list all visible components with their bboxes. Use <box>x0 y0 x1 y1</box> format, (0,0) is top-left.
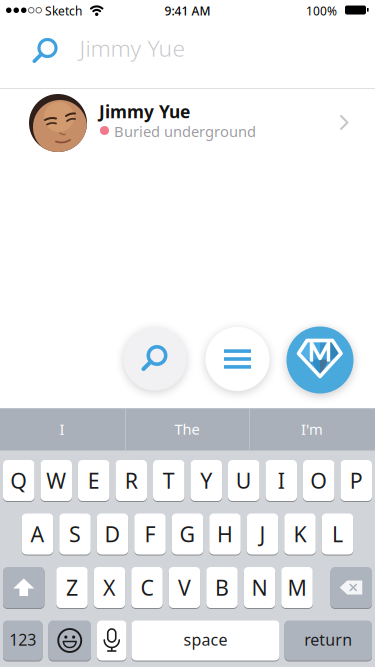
staticText: L <box>332 520 343 548</box>
button[interactable]: 123 <box>3 620 42 660</box>
button[interactable]: Y <box>190 460 222 501</box>
button[interactable]: D <box>97 513 128 554</box>
staticText: Sketch <box>45 3 82 19</box>
button[interactable]: Search <box>0 20 375 88</box>
button[interactable]: I <box>0 408 124 450</box>
staticText: I <box>59 419 64 439</box>
button[interactable]: J <box>247 513 278 554</box>
button[interactable]: Dictate <box>97 620 126 660</box>
staticText: The <box>174 419 199 439</box>
button[interactable]: T <box>153 460 184 501</box>
staticText: U <box>236 466 252 495</box>
button[interactable]: Search <box>123 327 186 390</box>
button[interactable]: A <box>22 513 53 554</box>
button[interactable]: F <box>134 513 166 554</box>
staticText: Q <box>10 466 27 495</box>
staticText: V <box>178 573 191 602</box>
staticText: P <box>350 466 363 495</box>
staticText: Buried underground <box>114 121 256 141</box>
button[interactable]: Z <box>56 567 88 608</box>
button[interactable]: The <box>125 408 249 450</box>
staticText: X <box>103 573 116 602</box>
staticText: 123 <box>9 629 36 650</box>
button[interactable]: K <box>284 513 316 554</box>
button[interactable]: L <box>322 513 353 554</box>
staticText: I <box>278 466 285 495</box>
staticText: N <box>251 573 267 602</box>
staticText: F <box>144 520 155 548</box>
button[interactable]: M <box>281 567 313 608</box>
staticText: J <box>259 520 265 548</box>
staticText: 9:41 AM <box>164 3 210 19</box>
button[interactable]: P <box>340 460 372 501</box>
button[interactable]: S <box>59 513 91 554</box>
button[interactable]: return <box>284 620 372 660</box>
staticText: E <box>88 466 100 495</box>
staticText: A <box>30 520 44 548</box>
button[interactable]: Delete <box>330 567 372 608</box>
button[interactable]: Emoji <box>48 620 91 660</box>
staticText: space <box>183 629 227 650</box>
button[interactable]: G <box>172 513 203 554</box>
button[interactable]: MineChat <box>286 326 353 393</box>
button[interactable]: C <box>131 567 163 608</box>
button[interactable]: Q <box>3 460 34 501</box>
staticText: B <box>215 573 229 602</box>
staticText: D <box>104 520 120 548</box>
staticText: M <box>287 573 306 602</box>
staticText: O <box>310 466 327 495</box>
staticText: S <box>69 520 81 548</box>
button[interactable]: V <box>169 567 200 608</box>
button[interactable]: W <box>40 460 72 501</box>
button[interactable]: R <box>115 460 147 501</box>
staticText: Y <box>200 466 212 495</box>
button[interactable]: U <box>228 460 259 501</box>
button[interactable]: N <box>244 567 275 608</box>
staticText: I'm <box>301 419 323 439</box>
button[interactable]: B <box>206 567 238 608</box>
button[interactable]: Jimmy Yue <box>0 89 375 157</box>
staticText: R <box>125 466 138 495</box>
staticText: G <box>179 520 195 548</box>
button[interactable]: I'm <box>250 408 374 450</box>
staticText: 100% <box>306 3 337 19</box>
staticText: T <box>163 466 175 495</box>
button[interactable]: O <box>303 460 334 501</box>
staticText: return <box>304 629 352 650</box>
button[interactable]: Shift <box>3 567 44 608</box>
staticText: Z <box>66 573 78 602</box>
button[interactable]: E <box>78 460 109 501</box>
button[interactable]: Menu <box>205 327 269 391</box>
staticText: K <box>293 520 306 548</box>
staticText: W <box>46 466 66 495</box>
button[interactable]: H <box>209 513 241 554</box>
button[interactable]: I <box>265 460 297 501</box>
button[interactable]: X <box>94 567 125 608</box>
staticText: Jimmy Yue <box>99 100 190 123</box>
staticText: H <box>217 520 233 548</box>
staticText: C <box>140 573 153 602</box>
button[interactable]: space <box>131 620 279 660</box>
staticText: Jimmy Yue <box>79 33 185 63</box>
